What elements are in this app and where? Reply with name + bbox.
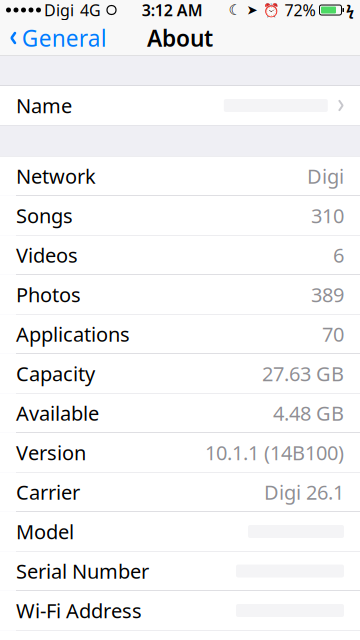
staticText: ☾	[228, 2, 241, 18]
staticText: 3:12 AM	[142, 0, 203, 21]
staticText: ➤	[246, 2, 257, 17]
staticText: Digi	[44, 0, 74, 21]
button[interactable]: Applications	[0, 314, 360, 353]
staticText: Available	[16, 400, 99, 426]
button[interactable]: Name	[0, 86, 360, 125]
staticText: Photos	[16, 281, 81, 308]
staticText: Model	[16, 518, 74, 545]
staticText: 4.48 GB	[273, 400, 344, 426]
staticText: Digi	[307, 163, 344, 189]
staticText: Digi 26.1	[264, 479, 344, 505]
staticText: 27.63 GB	[262, 360, 344, 387]
staticText: 10.1.1 (14B100)	[205, 439, 344, 466]
button[interactable]: Photos	[0, 275, 360, 314]
staticText: ϟ	[346, 0, 354, 20]
staticText: ⏰	[262, 2, 279, 18]
button[interactable]: Model	[0, 512, 360, 551]
staticText: Videos	[16, 242, 78, 268]
staticText: 6	[333, 242, 344, 268]
button[interactable]: Bluetooth	[0, 630, 360, 640]
button[interactable]: Wi-Fi Address	[0, 591, 360, 630]
staticText: General	[22, 23, 107, 53]
button[interactable]: Serial Number	[0, 551, 360, 590]
staticText: Network	[16, 163, 96, 189]
staticText: 389	[311, 281, 344, 308]
staticText: Capacity	[16, 360, 95, 387]
staticText: 72%	[284, 0, 315, 21]
button[interactable]: General	[0, 17, 115, 59]
button[interactable]: Available	[0, 393, 360, 432]
staticText: Serial Number	[16, 558, 149, 584]
button[interactable]: Capacity	[0, 354, 360, 393]
staticText: Songs	[16, 202, 73, 229]
staticText: 4G	[80, 0, 101, 21]
staticText: 70	[322, 321, 344, 347]
button[interactable]: Songs	[0, 196, 360, 235]
button[interactable]: Network	[0, 156, 360, 195]
staticText: Applications	[16, 321, 130, 347]
staticText: About	[147, 23, 213, 53]
staticText: Carrier	[16, 479, 80, 505]
staticText: Wi-Fi Address	[16, 597, 142, 624]
staticText: 310	[311, 202, 344, 229]
staticText: Version	[16, 439, 86, 466]
button[interactable]: Videos	[0, 235, 360, 274]
button[interactable]: Version	[0, 433, 360, 472]
staticText: Name	[16, 92, 72, 119]
button[interactable]: Carrier	[0, 472, 360, 511]
